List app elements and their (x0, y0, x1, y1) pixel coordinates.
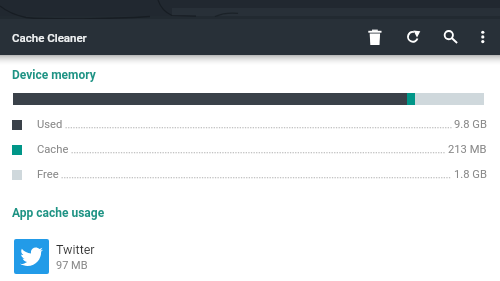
staticText: 213 MB (448, 143, 487, 156)
button[interactable]: Delete (356, 18, 392, 54)
staticText: Used (37, 118, 63, 131)
button[interactable]: Cache (0, 137, 500, 162)
staticText: Cache (37, 143, 69, 156)
staticText: Twitter (56, 242, 95, 257)
staticText: Free (37, 168, 59, 181)
button[interactable]: More options (464, 18, 500, 54)
button[interactable]: Used (0, 112, 500, 137)
staticText: 97 MB (56, 259, 88, 272)
staticText: App cache usage (12, 206, 105, 220)
button[interactable]: Twitter (0, 239, 500, 281)
staticText: 1.8 GB (454, 168, 487, 181)
staticText: Device memory (12, 68, 96, 82)
button[interactable]: Refresh (394, 18, 430, 54)
staticText: 9.8 GB (454, 118, 487, 131)
button[interactable]: Search (430, 18, 466, 54)
staticText: Cache Cleaner (12, 31, 87, 44)
button[interactable]: Free (0, 162, 500, 187)
